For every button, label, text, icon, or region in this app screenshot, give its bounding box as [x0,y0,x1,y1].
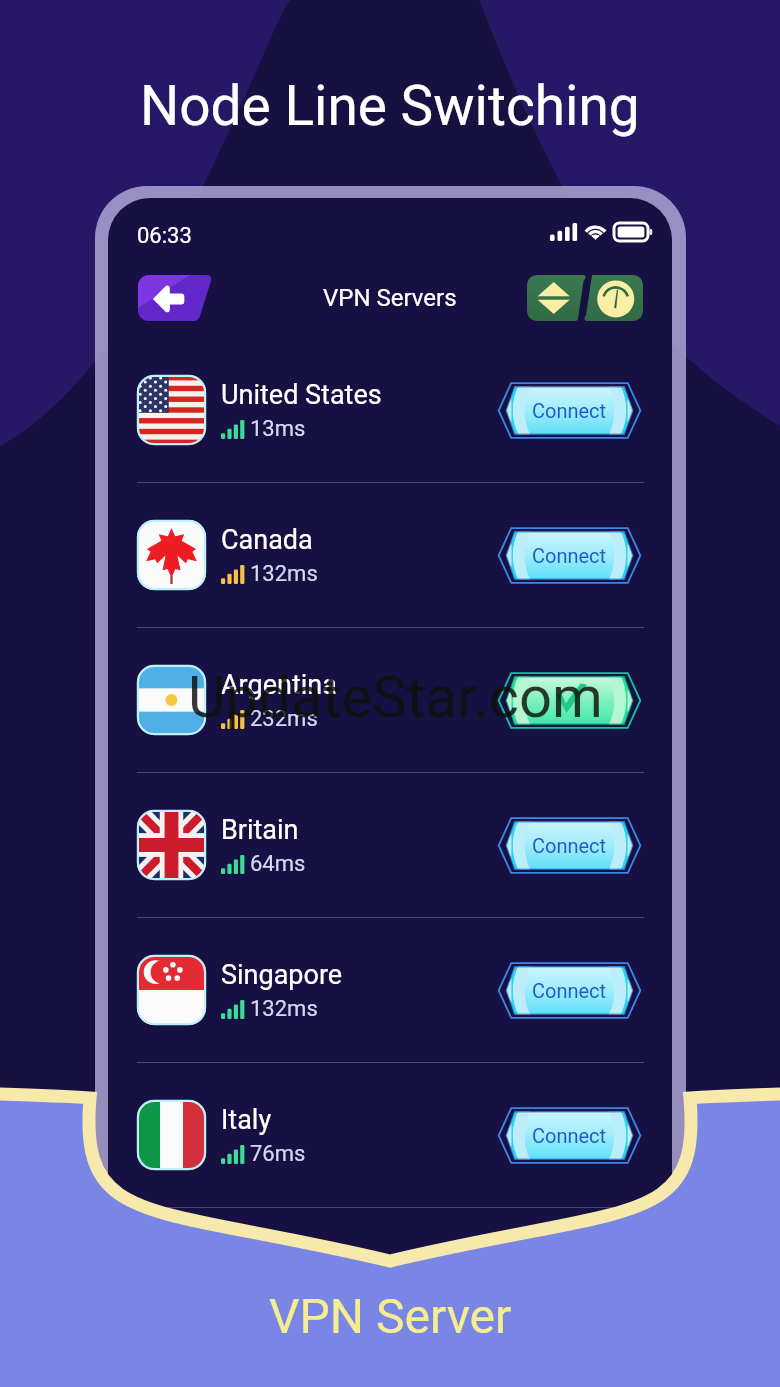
staticText: 132ms [250,561,318,587]
staticText: Connect [532,834,607,857]
button[interactable]: Speed test [585,275,643,321]
staticText: Node Line Switching [140,74,640,138]
button[interactable]: United States [108,338,672,482]
button[interactable] [496,672,643,729]
button[interactable]: Connect [496,962,643,1019]
button[interactable]: Singapore [108,918,672,1062]
button[interactable]: Connect [496,527,643,584]
staticText: 06:33 [137,223,192,249]
button[interactable]: Canada [108,483,672,627]
button[interactable]: Back [138,275,212,321]
staticText: Connect [532,399,607,422]
button[interactable]: Argentina [108,628,672,772]
button[interactable]: Connect [496,382,643,439]
staticText: United States [221,379,382,411]
staticText: 132ms [250,996,318,1022]
staticText: UpdateStar.com [188,663,603,731]
staticText: 64ms [250,851,306,877]
button[interactable]: Connect [496,1107,643,1164]
staticText: Singapore [221,959,343,991]
staticText: 76ms [250,1141,306,1167]
staticText: Britain [221,814,299,846]
button[interactable]: Sort [527,275,585,321]
staticText: Argentina [221,669,337,701]
staticText: VPN Servers [323,284,457,312]
staticText: Connect [532,979,607,1002]
staticText: Italy [221,1104,272,1136]
button[interactable]: Britain [108,773,672,917]
staticText: VPN Server [269,1288,512,1344]
button[interactable]: Connect [496,817,643,874]
staticText: Canada [221,524,313,556]
button[interactable]: Italy [108,1063,672,1207]
staticText: Connect [532,1124,607,1147]
staticText: Connect [532,544,607,567]
staticText: 13ms [250,416,306,442]
staticText: 232ms [250,706,318,732]
